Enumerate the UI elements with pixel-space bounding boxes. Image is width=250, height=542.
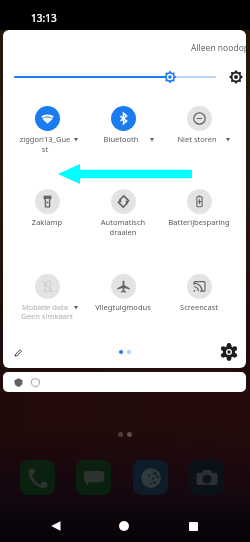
button[interactable]: Auto brightness (226, 67, 246, 87)
button[interactable]: Edit tiles (9, 343, 27, 361)
staticText: 13:13 (31, 11, 57, 25)
button[interactable]: Browser (133, 460, 168, 495)
button[interactable]: Mobiele data (9, 268, 85, 328)
button[interactable]: Vliegtuigmodus (85, 268, 161, 328)
button[interactable]: Phone (20, 460, 55, 495)
staticText: ziggorl13_Guest (18, 134, 72, 154)
button[interactable]: Camera (189, 460, 224, 495)
staticText: Screencast (166, 302, 232, 312)
button[interactable]: Bluetooth (85, 100, 161, 160)
staticText: Geen simkaart (9, 311, 85, 321)
button[interactable]: Messages (76, 460, 111, 495)
staticText: Vliegtuigmodus (90, 302, 156, 312)
staticText: Alleen noodoproepen (191, 42, 246, 54)
button[interactable]: Automatisch draaien (85, 183, 161, 243)
button[interactable]: Recent apps (182, 515, 204, 537)
button[interactable]: Wi-Fi (9, 100, 85, 160)
button[interactable]: Screencast (161, 268, 237, 328)
staticText: Zaklamp (14, 217, 80, 227)
button[interactable]: Niet storen (161, 100, 237, 160)
staticText: Automatisch draaien (90, 217, 156, 237)
button[interactable]: Zaklamp (9, 183, 85, 243)
staticText: Bluetooth (94, 134, 148, 144)
staticText: Mobiele data (18, 302, 72, 312)
button[interactable]: Back (45, 515, 67, 537)
button[interactable]: Settings (220, 343, 238, 361)
staticText: Niet storen (170, 134, 224, 144)
button[interactable] (3, 372, 246, 392)
button[interactable]: Home (113, 515, 135, 537)
staticText: Batterijbesparing (166, 217, 232, 227)
button[interactable]: Batterijbesparing (161, 183, 237, 243)
